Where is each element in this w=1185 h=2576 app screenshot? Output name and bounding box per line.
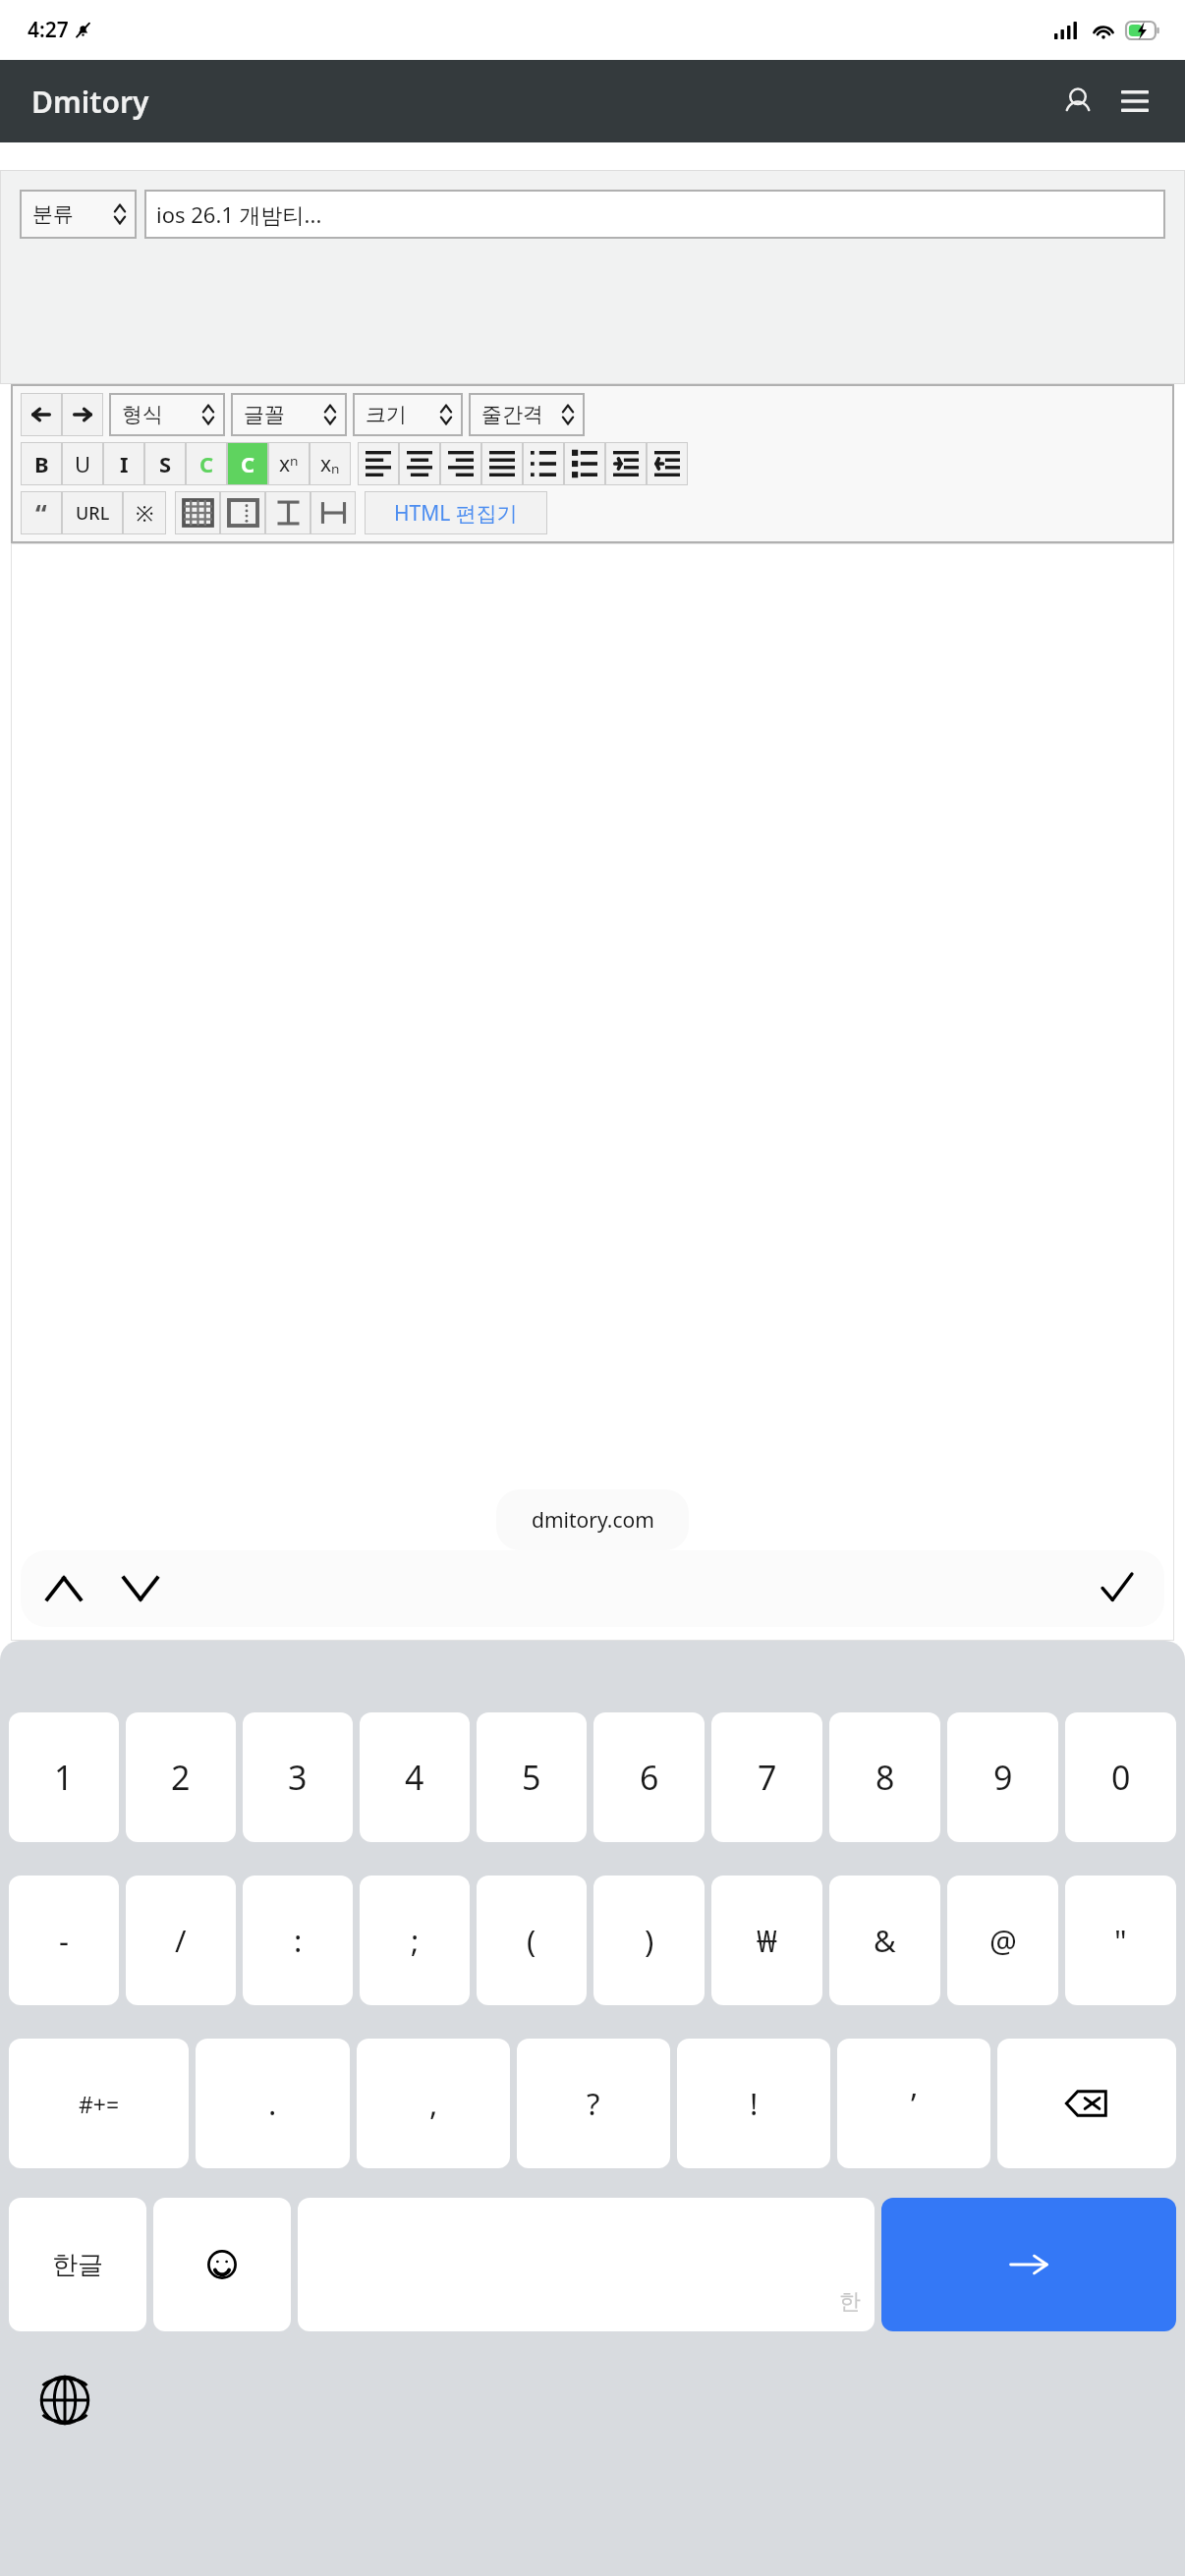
staticText: xⁿ: [279, 450, 299, 478]
staticText: :: [294, 1920, 303, 1961]
button[interactable]: (: [477, 1876, 587, 2005]
button[interactable]: Switch keyboard language: [37, 2373, 92, 2428]
button[interactable]: .: [196, 2039, 350, 2168]
button[interactable]: 9: [947, 1712, 1058, 1842]
staticText: U: [75, 449, 91, 478]
button[interactable]: 크기: [353, 393, 463, 436]
button[interactable]: ": [1065, 1876, 1176, 2005]
button[interactable]: B: [21, 442, 62, 485]
button[interactable]: -: [9, 1876, 119, 2005]
button[interactable]: !: [677, 2039, 830, 2168]
staticText: ’: [911, 2083, 917, 2124]
button[interactable]: Next field: [115, 1563, 166, 1614]
button[interactable]: Backspace: [997, 2039, 1176, 2168]
button[interactable]: Redo: [62, 393, 103, 436]
staticText: HTML 편집기: [394, 499, 518, 528]
button[interactable]: U: [62, 442, 103, 485]
button[interactable]: 0: [1065, 1712, 1176, 1842]
button[interactable]: ;: [360, 1876, 470, 2005]
button[interactable]: ios 26.1 개밤티...: [144, 190, 1165, 239]
staticText: 형식: [122, 402, 163, 427]
button[interactable]: ₩: [711, 1876, 822, 2005]
button[interactable]: :: [243, 1876, 353, 2005]
button[interactable]: @: [947, 1876, 1058, 2005]
button[interactable]: Insert table: [175, 491, 220, 534]
button[interactable]: URL: [62, 491, 123, 534]
staticText: ₩: [757, 1920, 777, 1961]
staticText: 한글: [52, 2249, 103, 2281]
staticText: B: [34, 449, 49, 478]
button[interactable]: 한글: [9, 2198, 146, 2331]
staticText: 분류: [32, 201, 74, 227]
staticText: ,: [429, 2083, 438, 2124]
button[interactable]: Undo: [21, 393, 62, 436]
button[interactable]: Previous field: [38, 1563, 89, 1614]
button[interactable]: #+=: [9, 2039, 189, 2168]
button[interactable]: dmitory.com: [496, 1489, 689, 1550]
button[interactable]: ’: [837, 2039, 990, 2168]
button[interactable]: &: [829, 1876, 940, 2005]
staticText: #+=: [79, 2089, 120, 2119]
button[interactable]: C: [227, 442, 268, 485]
button[interactable]: 줄간격: [469, 393, 585, 436]
staticText: 4: [405, 1755, 424, 1800]
staticText: 6: [640, 1755, 659, 1800]
staticText: 줄간격: [481, 402, 543, 427]
button[interactable]: 6: [593, 1712, 705, 1842]
button[interactable]: 2: [126, 1712, 236, 1842]
button[interactable]: /: [126, 1876, 236, 2005]
staticText: 7: [758, 1755, 777, 1800]
button[interactable]: S: [144, 442, 186, 485]
button[interactable]: 분류: [20, 190, 137, 239]
button[interactable]: 7: [711, 1712, 822, 1842]
button[interactable]: 1: [9, 1712, 119, 1842]
staticText: C: [199, 449, 214, 478]
button[interactable]: Align left: [358, 442, 399, 485]
staticText: -: [59, 1920, 69, 1961]
button[interactable]: [11, 543, 1174, 1641]
button[interactable]: “: [21, 491, 62, 534]
button[interactable]: 5: [477, 1712, 587, 1842]
button[interactable]: Outdent: [605, 442, 647, 485]
button[interactable]: C: [186, 442, 227, 485]
button[interactable]: HTML 편집기: [365, 491, 547, 534]
button[interactable]: ): [593, 1876, 705, 2005]
staticText: ※: [136, 498, 154, 528]
button[interactable]: 4: [360, 1712, 470, 1842]
button[interactable]: 8: [829, 1712, 940, 1842]
button[interactable]: Enter: [881, 2198, 1176, 2331]
button[interactable]: Insert page: [220, 491, 265, 534]
button[interactable]: ,: [357, 2039, 510, 2168]
button[interactable]: Numbered list: [523, 442, 564, 485]
button[interactable]: Bullet list: [564, 442, 605, 485]
staticText: S: [159, 449, 172, 478]
button[interactable]: I: [103, 442, 144, 485]
button[interactable]: Account: [1049, 73, 1106, 130]
staticText: 9: [993, 1755, 1013, 1800]
staticText: !: [750, 2083, 759, 2124]
button[interactable]: Horizontal merge: [310, 491, 356, 534]
staticText: (: [527, 1920, 536, 1961]
staticText: ;: [411, 1920, 420, 1961]
staticText: ": [1114, 1920, 1127, 1961]
staticText: I: [120, 449, 129, 478]
button[interactable]: 형식: [109, 393, 225, 436]
button[interactable]: Menu: [1106, 73, 1163, 130]
button[interactable]: Justify: [481, 442, 523, 485]
button[interactable]: xₙ: [310, 442, 351, 485]
staticText: 4:27: [28, 16, 69, 44]
button[interactable]: 글꼴: [231, 393, 347, 436]
button[interactable]: Done: [1092, 1563, 1143, 1614]
staticText: 3: [288, 1755, 308, 1800]
staticText: 1: [54, 1755, 74, 1800]
button[interactable]: 3: [243, 1712, 353, 1842]
button[interactable]: ?: [517, 2039, 670, 2168]
button[interactable]: Align right: [440, 442, 481, 485]
button[interactable]: xⁿ: [268, 442, 310, 485]
button[interactable]: Indent: [647, 442, 688, 485]
button[interactable]: Align center: [399, 442, 440, 485]
button[interactable]: ※: [123, 491, 166, 534]
button[interactable]: Emoji: [153, 2198, 291, 2331]
button[interactable]: Vertical merge: [265, 491, 310, 534]
